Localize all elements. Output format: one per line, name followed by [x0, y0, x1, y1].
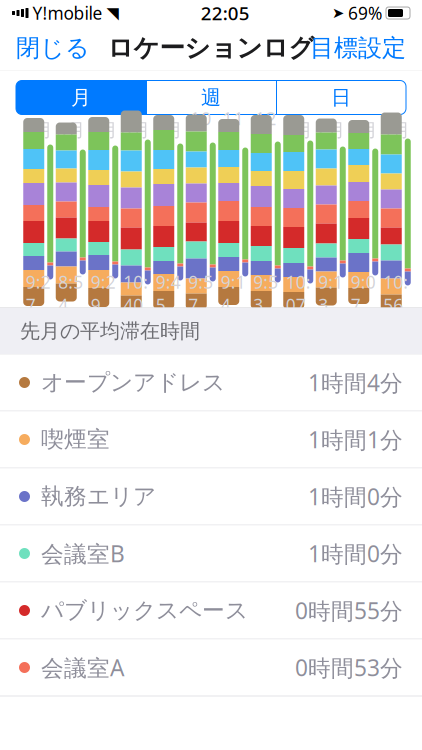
staticText: 11月: [222, 106, 244, 153]
staticText: 9:57: [188, 270, 213, 316]
staticText: 月: [71, 85, 91, 110]
staticText: ロケーションログ: [107, 32, 314, 63]
button[interactable]: 週: [146, 80, 276, 114]
staticText: 1月: [283, 117, 313, 142]
staticText: 10月: [190, 106, 212, 153]
staticText: 喫煙室: [41, 426, 110, 453]
staticText: 9:07: [351, 270, 376, 316]
staticText: 9:27: [26, 270, 51, 316]
staticText: 0時間53分: [295, 652, 403, 682]
staticText: 8:54: [58, 270, 83, 316]
staticText: パブリックスペース: [41, 597, 248, 624]
staticText: 週: [201, 85, 221, 110]
staticText: 69%: [348, 1, 382, 24]
staticText: 10:40: [123, 270, 148, 316]
staticText: 1時間0分: [308, 538, 403, 568]
staticText: ◥: [106, 4, 118, 22]
staticText: 9:13: [318, 270, 343, 316]
button[interactable]: パブリックスペース: [0, 582, 422, 639]
staticText: 閉じる: [16, 33, 90, 63]
staticText: 10:56: [383, 270, 408, 316]
staticText: 会議室B: [41, 538, 125, 568]
staticText: 会議室A: [41, 652, 124, 682]
staticText: 9:53: [253, 270, 278, 316]
button[interactable]: 喫煙室: [0, 411, 422, 468]
staticText: 22:05: [201, 1, 250, 25]
staticText: 9:29: [91, 270, 116, 316]
button[interactable]: 執務エリア: [0, 468, 422, 525]
staticText: 7月: [88, 117, 118, 142]
button[interactable]: 月: [16, 80, 146, 114]
button[interactable]: 会議室A: [0, 639, 422, 696]
staticText: 執務エリア: [41, 483, 156, 510]
staticText: 5月: [23, 117, 53, 142]
staticText: 1時間0分: [308, 481, 403, 511]
staticText: 9:45: [156, 270, 181, 316]
staticText: 4月: [381, 117, 411, 142]
staticText: 12月: [255, 106, 277, 153]
staticText: 先月の平均滞在時間: [20, 319, 200, 343]
staticText: 8月: [121, 117, 151, 142]
staticText: 9:14: [221, 270, 246, 316]
staticText: 1時間4分: [308, 367, 403, 397]
staticText: オープンアドレス: [41, 369, 225, 396]
staticText: 3月: [348, 117, 378, 142]
button[interactable]: 目標設定: [296, 25, 420, 71]
staticText: 9月: [153, 117, 183, 142]
staticText: 日: [331, 85, 351, 110]
staticText: 2月: [316, 117, 346, 142]
staticText: 目標設定: [310, 33, 406, 63]
button[interactable]: オープンアドレス: [0, 354, 422, 411]
staticText: 1時間1分: [308, 424, 403, 454]
button[interactable]: 日: [276, 80, 406, 114]
staticText: 0時間55分: [295, 595, 403, 625]
staticText: ➤: [332, 5, 344, 21]
button[interactable]: 閉じる: [2, 25, 104, 71]
staticText: 10:07: [286, 270, 311, 316]
button[interactable]: 会議室B: [0, 525, 422, 582]
staticText: Y!mobile: [32, 1, 102, 24]
staticText: 6月: [56, 117, 86, 142]
